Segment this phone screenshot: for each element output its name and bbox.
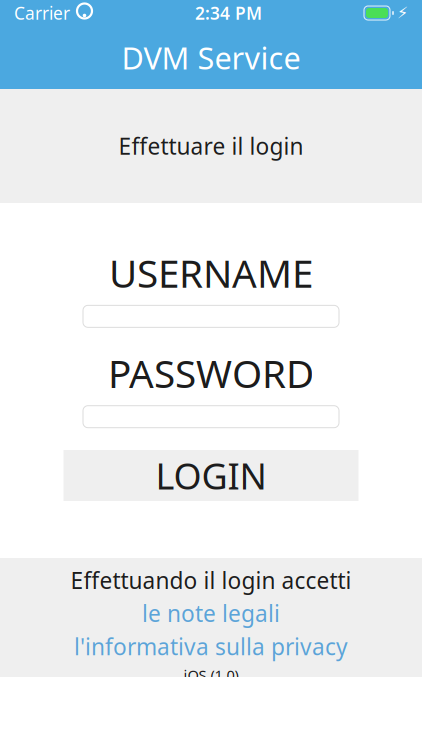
staticText: USERNAME <box>109 247 313 298</box>
button[interactable]: l'informativa sulla privacy <box>74 628 348 661</box>
button[interactable]: LOGIN <box>63 450 358 501</box>
staticText: Effettuando il login accetti <box>70 565 351 595</box>
staticText: DVM Service <box>121 37 300 78</box>
staticText: ⚡︎ <box>397 4 408 22</box>
staticText: l'informativa sulla privacy <box>74 631 348 661</box>
staticText: PASSWORD <box>108 347 314 399</box>
staticText: 2:34 PM <box>195 1 262 24</box>
staticText: Effettuare il login <box>118 131 303 161</box>
staticText: LOGIN <box>155 452 266 499</box>
staticText: le note legali <box>142 598 280 628</box>
staticText: Carrier <box>14 1 70 24</box>
staticText: iOS (1.0) <box>183 665 238 685</box>
button[interactable]: le note legali <box>142 595 280 628</box>
